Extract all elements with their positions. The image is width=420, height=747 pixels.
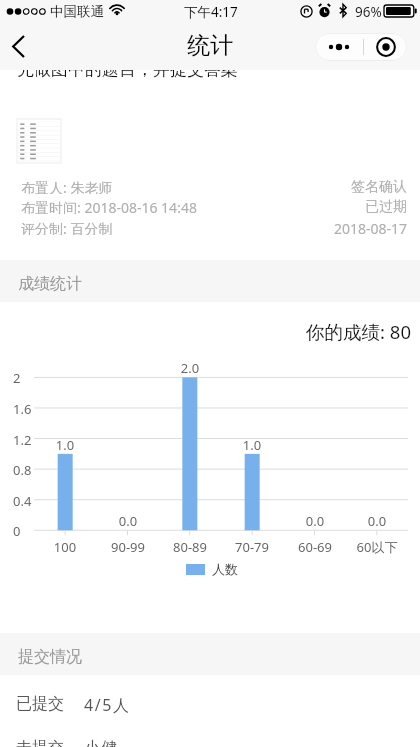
button[interactable]: Close: [364, 33, 407, 61]
staticText: 0.8: [13, 461, 32, 479]
staticText: 0.0: [98, 512, 158, 530]
staticText: 1.2: [13, 431, 32, 449]
staticText: 你的成绩: 80: [0, 319, 411, 344]
staticText: 先做图中的题目，并提交答案: [17, 59, 238, 80]
staticText: 0.0: [347, 512, 407, 530]
staticText: 下午4:17: [184, 3, 238, 21]
button[interactable]: More: [315, 33, 363, 61]
staticText: 4/5人: [84, 694, 131, 716]
staticText: 评分制: 百分制: [21, 219, 113, 235]
staticText: 中国联通: [50, 3, 104, 20]
staticText: 成绩统计: [18, 274, 82, 294]
staticText: 签名确认: [0, 178, 407, 194]
staticText: 0.4: [13, 492, 32, 510]
staticText: 布置人: 朱老师: [21, 178, 113, 194]
staticText: 2018-08-17: [0, 219, 407, 235]
staticText: 60-69: [285, 538, 345, 556]
staticText: 100: [35, 538, 95, 556]
staticText: 已过期: [0, 198, 407, 214]
staticText: 0.0: [285, 512, 345, 530]
staticText: 1.0: [222, 436, 282, 454]
staticText: 0: [13, 522, 21, 540]
staticText: 提交情况: [18, 647, 82, 667]
staticText: 小健: [84, 738, 120, 747]
staticText: 统计: [0, 31, 420, 60]
staticText: 布置时间: 2018-08-16 14:48: [21, 198, 197, 214]
staticText: 已提交: [16, 694, 64, 714]
button[interactable]: [17, 119, 61, 163]
staticText: 60以下: [347, 538, 407, 556]
button[interactable]: 未提交: [0, 730, 420, 747]
staticText: 1.6: [13, 400, 32, 418]
staticText: 2: [13, 369, 21, 387]
staticText: 未提交: [16, 738, 64, 747]
staticText: 人数: [212, 561, 238, 577]
button[interactable]: Back: [2, 30, 34, 62]
staticText: 96%: [355, 3, 382, 21]
staticText: 2.0: [160, 359, 220, 377]
staticText: 1.0: [35, 436, 95, 454]
staticText: 90-99: [98, 538, 158, 556]
staticText: 70-79: [222, 538, 282, 556]
staticText: 80-89: [160, 538, 220, 556]
button[interactable]: 已提交: [0, 686, 420, 720]
